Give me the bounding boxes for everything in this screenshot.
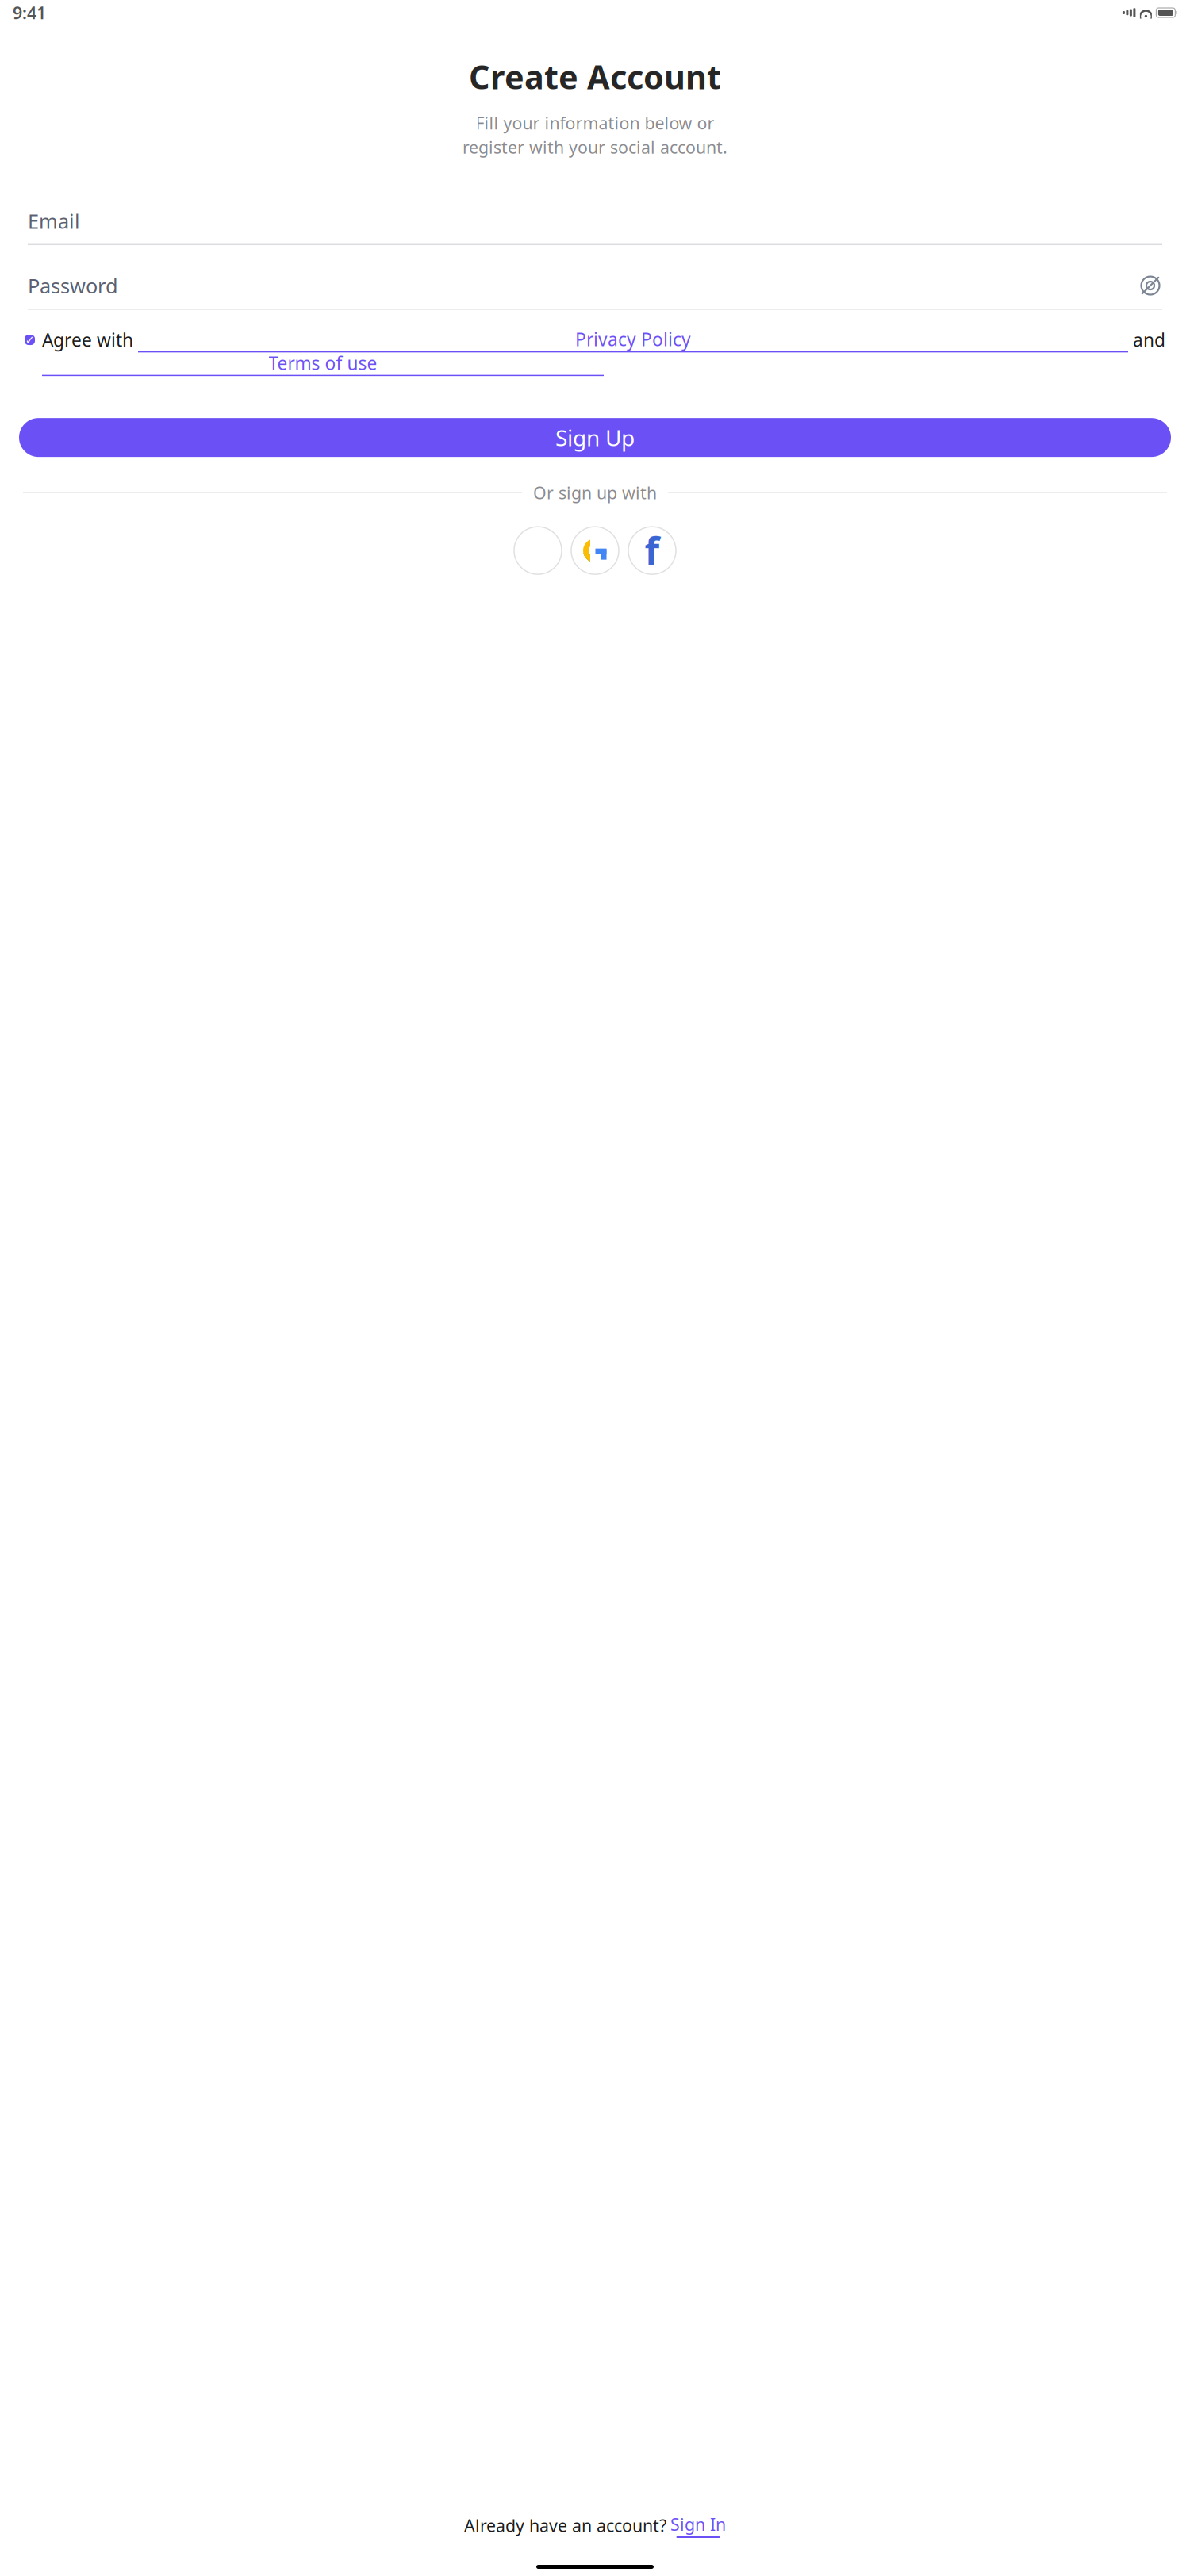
button[interactable]: Sign up with Facebook [628, 527, 676, 574]
staticText: Already have an account? [464, 2514, 666, 2537]
staticText: Email [28, 208, 80, 234]
button[interactable]: Show password [1138, 274, 1162, 297]
staticText: Agree with [42, 328, 138, 352]
staticText: Or sign up with [533, 481, 657, 504]
button[interactable]: Terms of use [42, 351, 604, 376]
staticText: Password [28, 272, 118, 299]
staticText: Sign In [670, 2513, 726, 2536]
staticText: Sign Up [555, 423, 635, 452]
staticText: and [1128, 328, 1165, 352]
button[interactable]: Sign up with Google [571, 527, 619, 574]
staticText: Fill your information below or [476, 112, 714, 134]
button[interactable]: Privacy Policy [138, 327, 1128, 352]
staticText: Create Account [469, 55, 721, 98]
staticText: ✓ [25, 333, 35, 346]
button[interactable]: Sign up with Apple [514, 527, 562, 574]
button[interactable]: Already have an account? [464, 2513, 726, 2538]
staticText: register with your social account. [463, 136, 727, 158]
staticText: Privacy Policy [575, 327, 691, 351]
button[interactable]: Agree to terms [25, 332, 35, 348]
staticText: 9:41 [13, 1, 46, 24]
button[interactable]: Sign Up [19, 418, 1171, 457]
staticText: f [645, 525, 660, 576]
staticText: Terms of use [269, 351, 377, 375]
